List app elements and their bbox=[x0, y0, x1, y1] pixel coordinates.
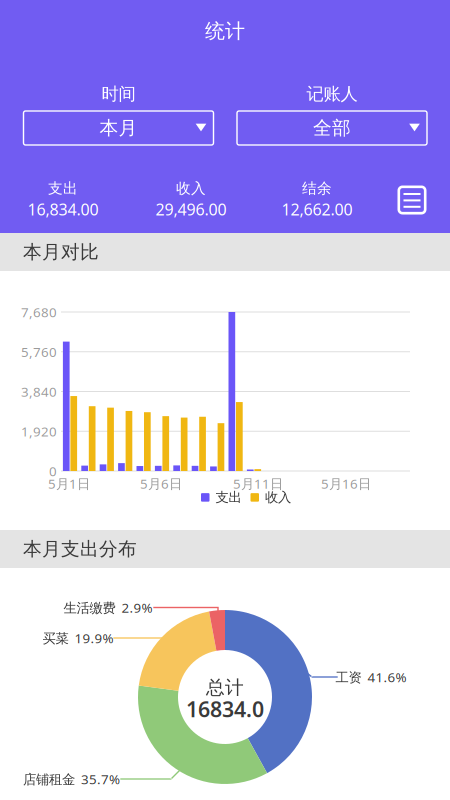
staticText: 收入 bbox=[265, 489, 291, 506]
staticText: 0 bbox=[49, 462, 57, 480]
staticText: 店铺租金 35.7% bbox=[23, 770, 120, 788]
staticText: 结余 bbox=[302, 179, 332, 197]
staticText: 全部 bbox=[313, 116, 351, 139]
staticText: 生活缴费 2.9% bbox=[63, 599, 152, 616]
staticText: 时间 bbox=[101, 83, 135, 105]
staticText: 本月支出分布 bbox=[23, 537, 137, 560]
staticText: 统计 bbox=[205, 19, 245, 43]
staticText: 12,662.00 bbox=[281, 199, 352, 220]
staticText: 总计 bbox=[206, 676, 244, 699]
button[interactable]: 明细列表 bbox=[388, 176, 436, 224]
staticText: 工资 41.6% bbox=[335, 668, 406, 686]
staticText: 7,680 bbox=[21, 303, 57, 321]
staticText: 买菜 19.9% bbox=[42, 629, 113, 647]
staticText: 16,834.00 bbox=[27, 199, 98, 220]
staticText: 16834.0 bbox=[186, 695, 264, 723]
staticText: 5月11日 bbox=[233, 475, 283, 492]
staticText: 收入 bbox=[176, 179, 206, 197]
staticText: 本月对比 bbox=[23, 240, 99, 263]
staticText: 支出 bbox=[215, 489, 241, 506]
staticText: 5,760 bbox=[21, 343, 57, 361]
staticText: 5月1日 bbox=[48, 475, 90, 492]
staticText: 5月16日 bbox=[321, 475, 371, 492]
staticText: 5月6日 bbox=[140, 475, 182, 492]
staticText: 29,496.00 bbox=[155, 199, 226, 220]
staticText: 本月 bbox=[99, 116, 137, 139]
staticText: 记账人 bbox=[306, 83, 357, 105]
button[interactable]: 全部 bbox=[237, 111, 427, 145]
staticText: 3,840 bbox=[21, 383, 57, 400]
staticText: 1,920 bbox=[21, 422, 57, 440]
staticText: 支出 bbox=[48, 179, 78, 197]
button[interactable]: 本月 bbox=[23, 111, 213, 145]
